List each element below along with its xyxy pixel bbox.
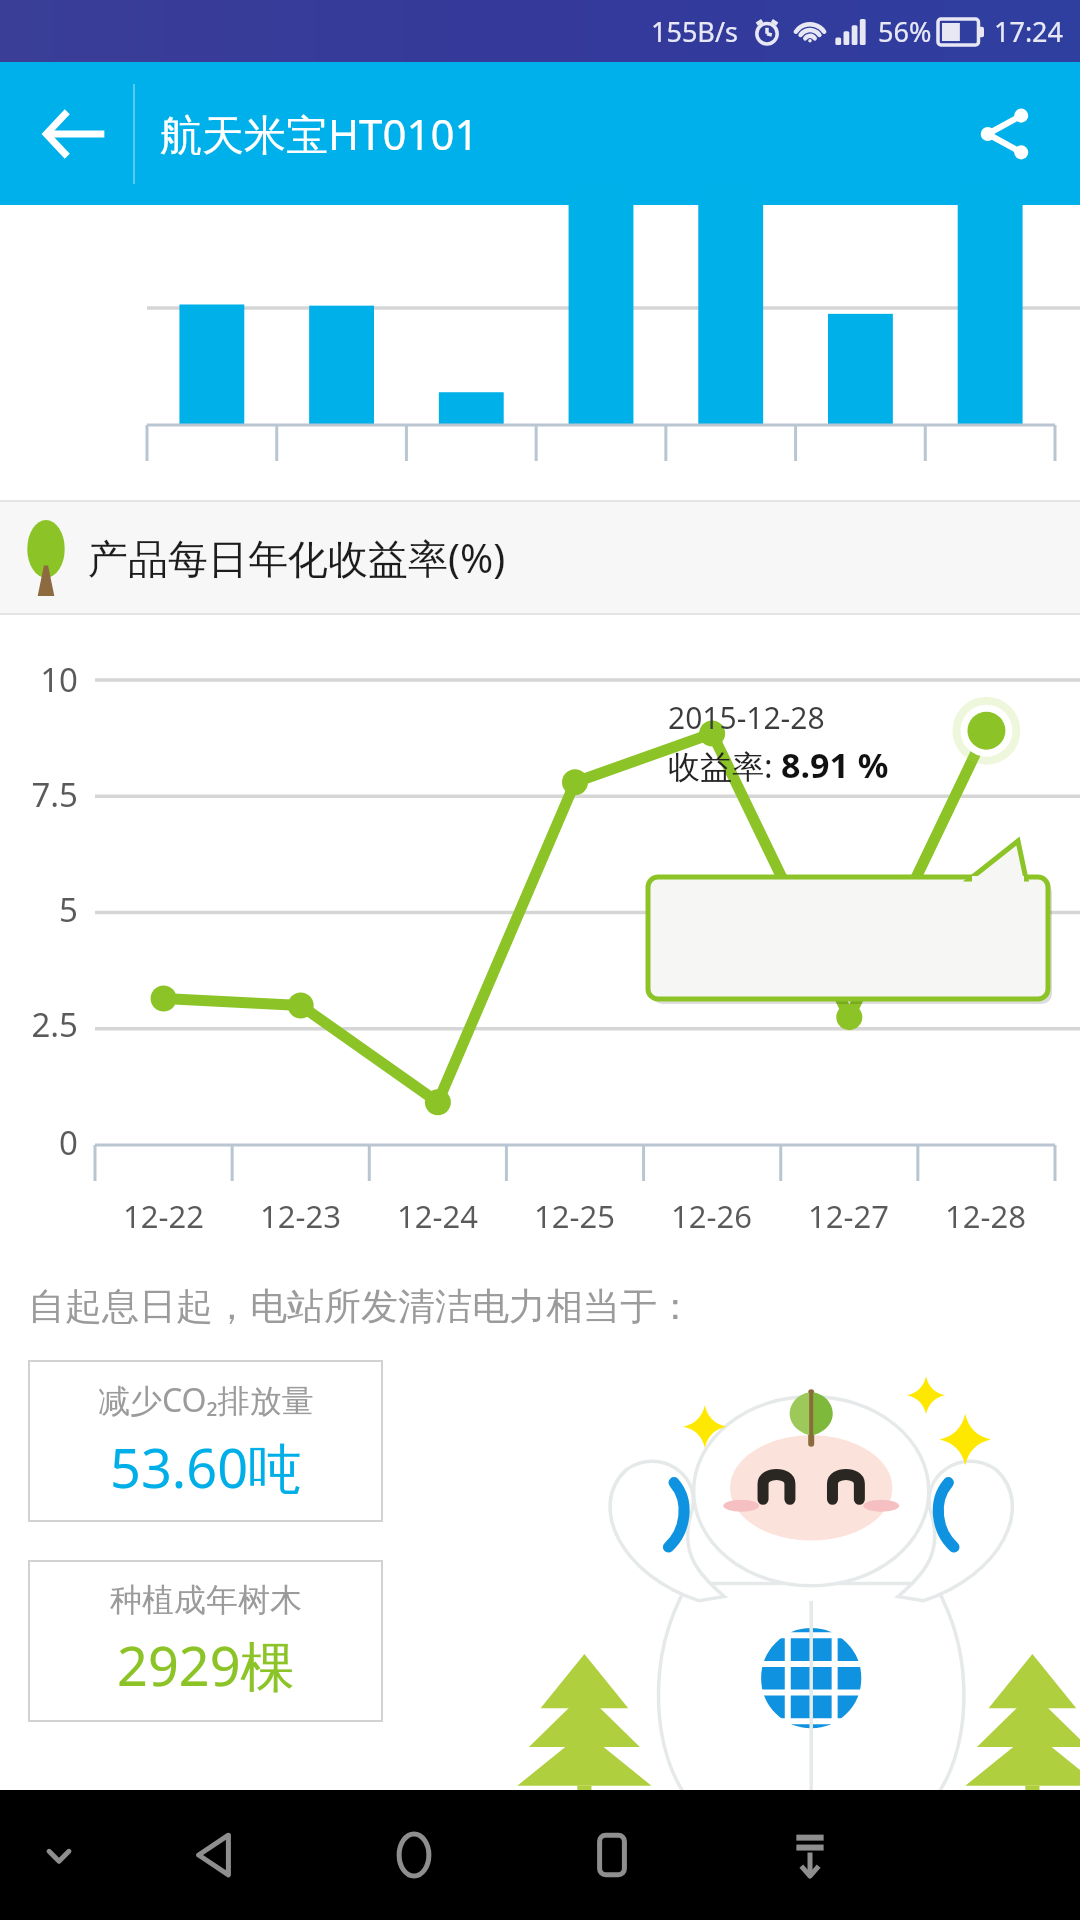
- staticText: 12-23: [232, 1195, 369, 1237]
- staticText: 12-22: [95, 1195, 232, 1237]
- button[interactable]: Back: [117, 1790, 315, 1920]
- button[interactable]: Download: [711, 1790, 909, 1920]
- staticText: 8.91 %: [781, 742, 889, 788]
- staticText: 航天米宝HT0101: [160, 105, 479, 162]
- staticText: 56%: [878, 13, 932, 50]
- button[interactable]: Back: [18, 79, 128, 189]
- staticText: 2929棵: [117, 1628, 295, 1702]
- staticText: 10: [0, 657, 78, 702]
- staticText: 12-25: [506, 1195, 643, 1237]
- staticText: 12-26: [643, 1195, 780, 1237]
- staticText: 产品每日年化收益率(%): [88, 530, 506, 585]
- staticText: 2015-12-28: [668, 697, 825, 738]
- staticText: 12-27: [780, 1195, 917, 1237]
- button[interactable]: 减少CO₂排放量: [28, 1360, 383, 1522]
- button[interactable]: Hide keyboard: [0, 1790, 117, 1920]
- staticText: 12-28: [917, 1195, 1054, 1237]
- staticText: 5: [0, 887, 78, 932]
- button[interactable]: Recents: [513, 1790, 711, 1920]
- staticText: 0: [0, 1120, 78, 1165]
- button[interactable]: Home: [315, 1790, 513, 1920]
- staticText: 12-24: [369, 1195, 506, 1237]
- staticText: 17:24: [994, 13, 1064, 50]
- button[interactable]: Share: [950, 79, 1060, 189]
- staticText: 减少CO₂排放量: [98, 1378, 314, 1422]
- staticText: 收益率:: [668, 744, 781, 788]
- staticText: 种植成年树木: [110, 1580, 302, 1620]
- staticText: 53.60吨: [110, 1430, 303, 1504]
- staticText: 155B/s: [651, 13, 738, 50]
- staticText: 7.5: [0, 772, 78, 817]
- staticText: 自起息日起，电站所发清洁电力相当于：: [28, 1283, 694, 1330]
- button[interactable]: 种植成年树木: [28, 1560, 383, 1722]
- staticText: 2.5: [0, 1002, 78, 1047]
